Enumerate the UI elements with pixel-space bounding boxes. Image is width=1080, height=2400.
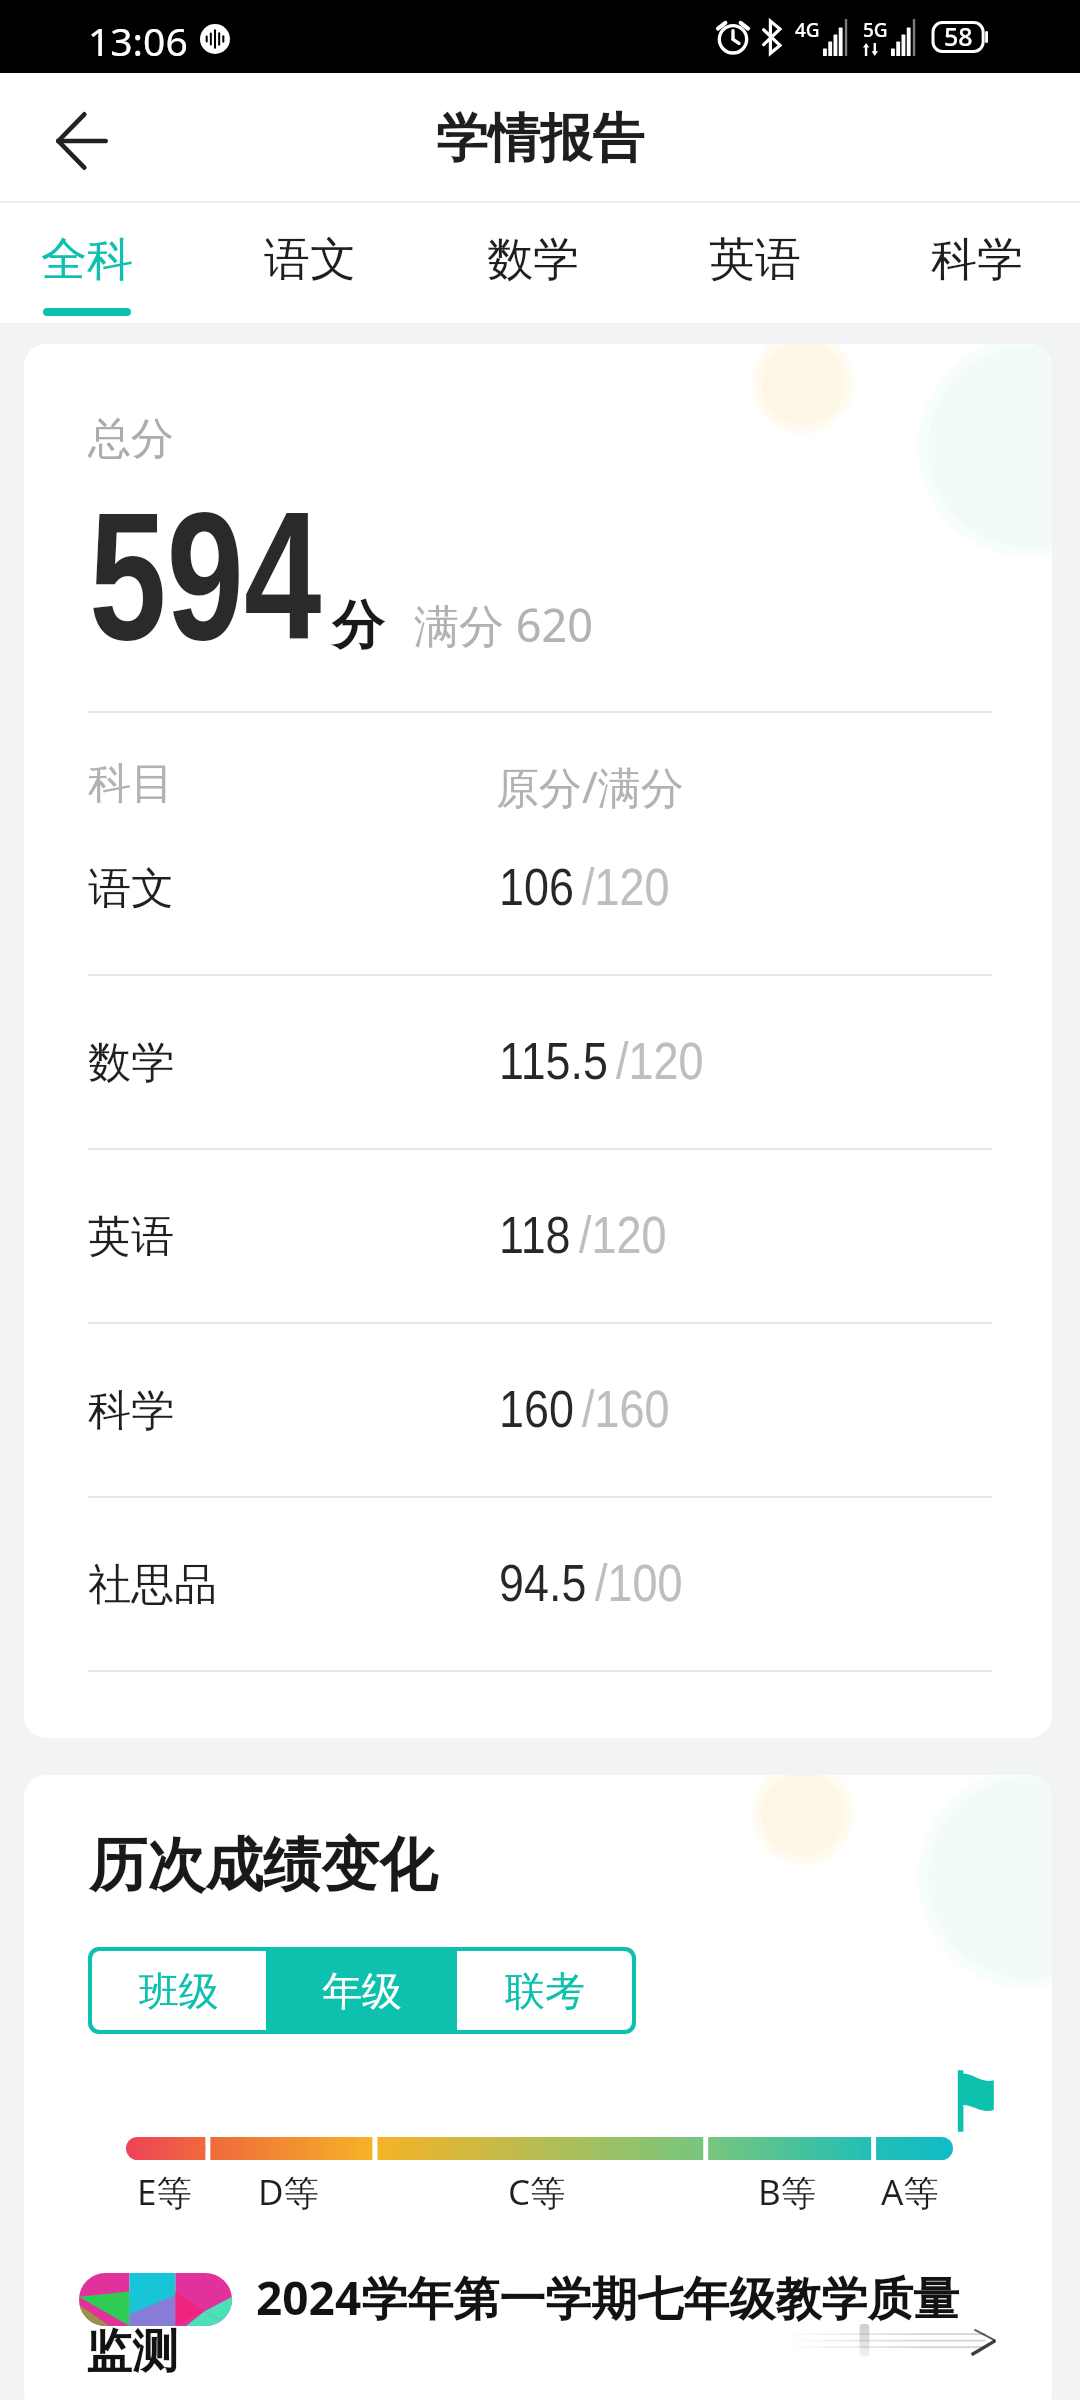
staticText: 分 — [332, 593, 384, 659]
staticText: C等 — [508, 2168, 566, 2216]
button[interactable]: 年级 — [270, 1947, 453, 2034]
staticText: 160 — [499, 1381, 575, 1438]
staticText: 语文 — [264, 231, 356, 289]
button[interactable]: 数学 — [429, 203, 637, 323]
staticText: 58 — [944, 19, 973, 53]
staticText: 4G — [795, 17, 820, 43]
staticText: E等 — [137, 2168, 192, 2216]
staticText: 年级 — [322, 1966, 402, 2016]
button[interactable]: 全科 — [0, 203, 191, 323]
staticText: 班级 — [139, 1966, 219, 2016]
button[interactable]: 科学 — [873, 203, 1080, 323]
staticText: 115.5 — [499, 1033, 608, 1090]
button[interactable]: 语文 — [206, 203, 414, 323]
staticText: 历次成绩变化 — [89, 1829, 437, 1902]
staticText: 总分 — [88, 412, 174, 466]
staticText: 满分 620 — [414, 594, 593, 655]
staticText: 语文 — [88, 862, 174, 916]
button[interactable]: Back — [34, 93, 130, 189]
button[interactable]: 联考 — [457, 1951, 632, 2030]
staticText: 数学 — [487, 231, 579, 289]
staticText: 联考 — [505, 1966, 585, 2016]
button[interactable]: 班级 — [92, 1951, 266, 2030]
staticText: D等 — [258, 2168, 319, 2216]
staticText: /160 — [582, 1381, 670, 1438]
staticText: B等 — [758, 2168, 816, 2216]
staticText: 118 — [499, 1207, 571, 1264]
staticText: 数学 — [88, 1036, 174, 1090]
staticText: 科目 — [88, 757, 174, 811]
staticText: 英语 — [88, 1210, 174, 1264]
staticText: /120 — [616, 1033, 704, 1090]
staticText: 监测 — [86, 2323, 178, 2381]
staticText: 2024学年第一学期七年级教学质量 — [256, 2266, 960, 2329]
staticText: 原分/满分 — [496, 757, 684, 816]
staticText: 13:06 — [88, 14, 188, 67]
staticText: 594 — [89, 475, 321, 677]
staticText: 科学 — [88, 1384, 174, 1438]
staticText: /100 — [595, 1555, 683, 1612]
staticText: 英语 — [709, 231, 801, 289]
staticText: 社思品 — [88, 1558, 217, 1612]
staticText: 106 — [499, 859, 575, 916]
staticText: 科学 — [931, 231, 1023, 289]
button[interactable]: 英语 — [651, 203, 859, 323]
staticText: 学情报告 — [436, 106, 644, 172]
staticText: 5G — [863, 17, 888, 43]
staticText: /120 — [582, 859, 670, 916]
staticText: 全科 — [41, 231, 133, 289]
staticText: 94.5 — [499, 1555, 587, 1612]
staticText: /120 — [579, 1207, 667, 1264]
staticText: A等 — [881, 2168, 939, 2216]
